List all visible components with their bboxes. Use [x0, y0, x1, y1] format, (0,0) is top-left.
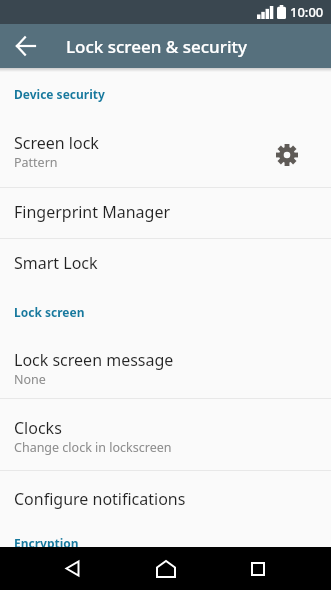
button[interactable]: Fingerprint Manager [0, 188, 331, 238]
staticText: Smart Lock [14, 252, 98, 274]
button[interactable] [65, 560, 80, 577]
staticText: Clocks [14, 417, 62, 439]
button[interactable] [16, 36, 36, 56]
staticText: Lock screen [14, 304, 85, 320]
staticText: None [14, 371, 46, 388]
staticText: Screen lock [14, 132, 99, 154]
staticText: Device security [14, 86, 105, 102]
button[interactable]: Configure notifications [0, 471, 331, 528]
staticText: Lock screen & security [66, 35, 248, 58]
staticText: Lock screen message [14, 349, 174, 371]
staticText: Fingerprint Manager [14, 201, 171, 223]
staticText: 10:00 [290, 3, 324, 21]
staticText: Pattern [14, 154, 58, 171]
button[interactable] [156, 560, 176, 578]
staticText: Configure notifications [14, 488, 186, 510]
button[interactable] [251, 562, 265, 576]
button[interactable]: Smart Lock [0, 239, 331, 288]
staticText: Encryption [14, 535, 79, 551]
button[interactable]: Lock screen message [0, 330, 331, 398]
staticText: Change clock in lockscreen [14, 439, 172, 456]
button[interactable]: Clocks [0, 399, 331, 470]
button[interactable]: Screen lock [0, 105, 331, 187]
